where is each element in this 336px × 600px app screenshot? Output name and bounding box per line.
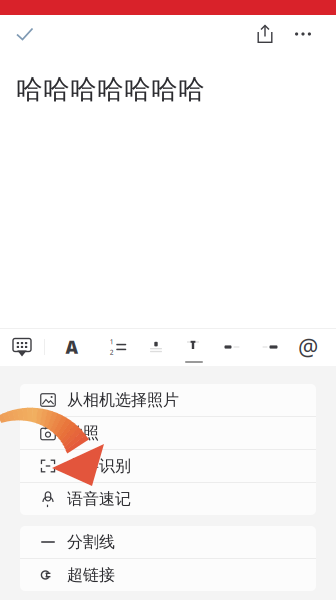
button[interactable]: Heading [175,331,213,361]
staticText: 拍照 [67,423,99,443]
staticText: 从相机选择照片 [67,390,179,410]
button[interactable]: 语音速记 [20,483,316,515]
button[interactable]: Keyboard [0,332,44,362]
button[interactable]: 拍照 [20,417,316,449]
button[interactable]: 分割线 [20,526,316,558]
button[interactable]: 文字识别 [20,450,316,482]
button[interactable]: More [284,15,322,53]
button[interactable]: Text style [45,332,99,362]
staticText: 文字识别 [67,456,131,476]
button[interactable]: Quote [213,332,251,362]
button[interactable]: Share [246,15,284,53]
staticText: A [65,335,78,358]
button[interactable]: Numbered list [99,332,137,362]
button[interactable]: Indent [251,332,289,362]
button[interactable]: 超链接 [20,559,316,591]
staticText: 2 [110,348,114,357]
button[interactable]: 从相机选择照片 [20,384,316,416]
staticText: 语音速记 [67,489,131,509]
staticText: 分割线 [67,532,115,552]
staticText: @ [298,332,318,362]
staticText: 1 [110,337,114,346]
button[interactable]: Mention [289,332,327,362]
staticText: 哈哈哈哈哈哈哈 [16,73,205,106]
button[interactable]: Done [3,15,47,53]
button[interactable]: Checklist [137,332,175,362]
staticText: 超链接 [67,565,115,585]
